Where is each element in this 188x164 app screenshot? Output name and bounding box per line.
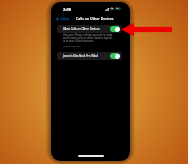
staticText: 2:09 [63,7,71,12]
button[interactable]: Back [56,17,70,21]
staticText: Use your iPhone cellular account to make… [63,33,114,42]
staticText: ALLOW CALLS ON [63,45,81,48]
other: Back [56,17,59,21]
button[interactable]: Allow Calls on Other Devices [57,25,122,33]
staticText: Calls on Other Devices [76,16,114,21]
button[interactable]: Toggle [110,53,120,59]
button[interactable]: Toggle [110,26,120,32]
staticText: James's MacBook Pro (Mac) [63,54,99,58]
staticText: Allow Calls on Other Devices [63,27,100,31]
staticText: Cellular [60,17,70,21]
button[interactable]: James's MacBook Pro (Mac) [57,52,122,60]
